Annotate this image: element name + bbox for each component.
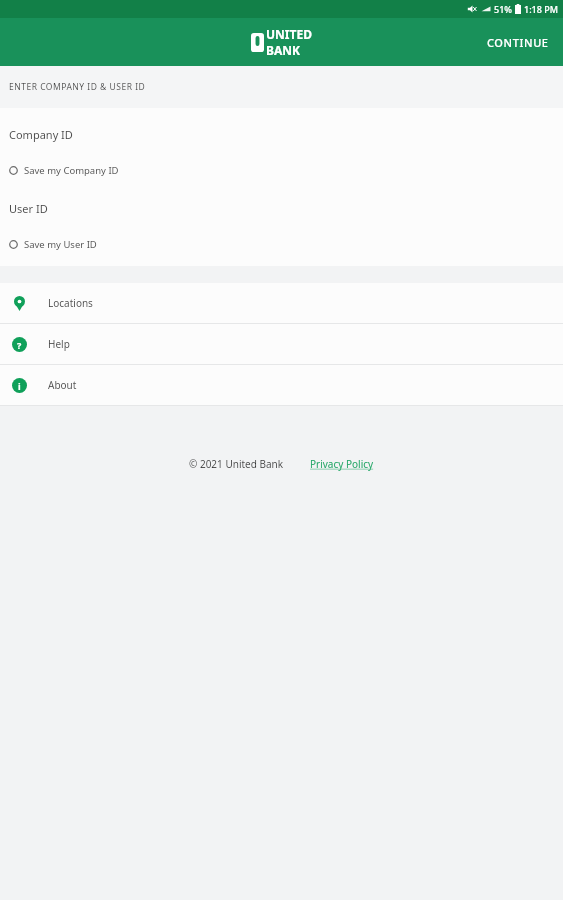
- button[interactable]: Save my Company ID: [0, 160, 563, 180]
- staticText: User ID: [9, 201, 48, 216]
- staticText: 1:18 PM: [524, 3, 558, 15]
- staticText: Company ID: [9, 127, 73, 142]
- staticText: Help: [48, 337, 70, 351]
- other: About: [12, 378, 27, 393]
- staticText: Save my Company ID: [24, 164, 119, 177]
- staticText: BANK: [266, 42, 301, 58]
- staticText: Locations: [48, 296, 93, 310]
- staticText: ?: [17, 339, 22, 351]
- staticText: 51%: [494, 3, 512, 15]
- staticText: UNITED: [266, 26, 312, 42]
- staticText: About: [48, 378, 77, 392]
- other: Help: [12, 337, 27, 352]
- button[interactable]: Privacy Policy: [310, 457, 374, 471]
- staticText: Privacy Policy: [310, 457, 374, 471]
- button[interactable]: Company ID: [0, 119, 563, 149]
- staticText: Save my User ID: [24, 238, 97, 251]
- other: Locations: [14, 296, 25, 311]
- staticText: © 2021 United Bank: [189, 457, 284, 471]
- button[interactable]: Help: [0, 324, 563, 364]
- button[interactable]: About: [0, 365, 563, 405]
- button[interactable]: CONTINUE: [473, 25, 563, 60]
- staticText: i: [18, 380, 21, 392]
- button[interactable]: Save my User ID: [0, 234, 563, 254]
- button[interactable]: Locations: [0, 283, 563, 323]
- staticText: CONTINUE: [487, 35, 549, 50]
- staticText: ENTER COMPANY ID & USER ID: [9, 81, 146, 93]
- button[interactable]: User ID: [0, 193, 563, 223]
